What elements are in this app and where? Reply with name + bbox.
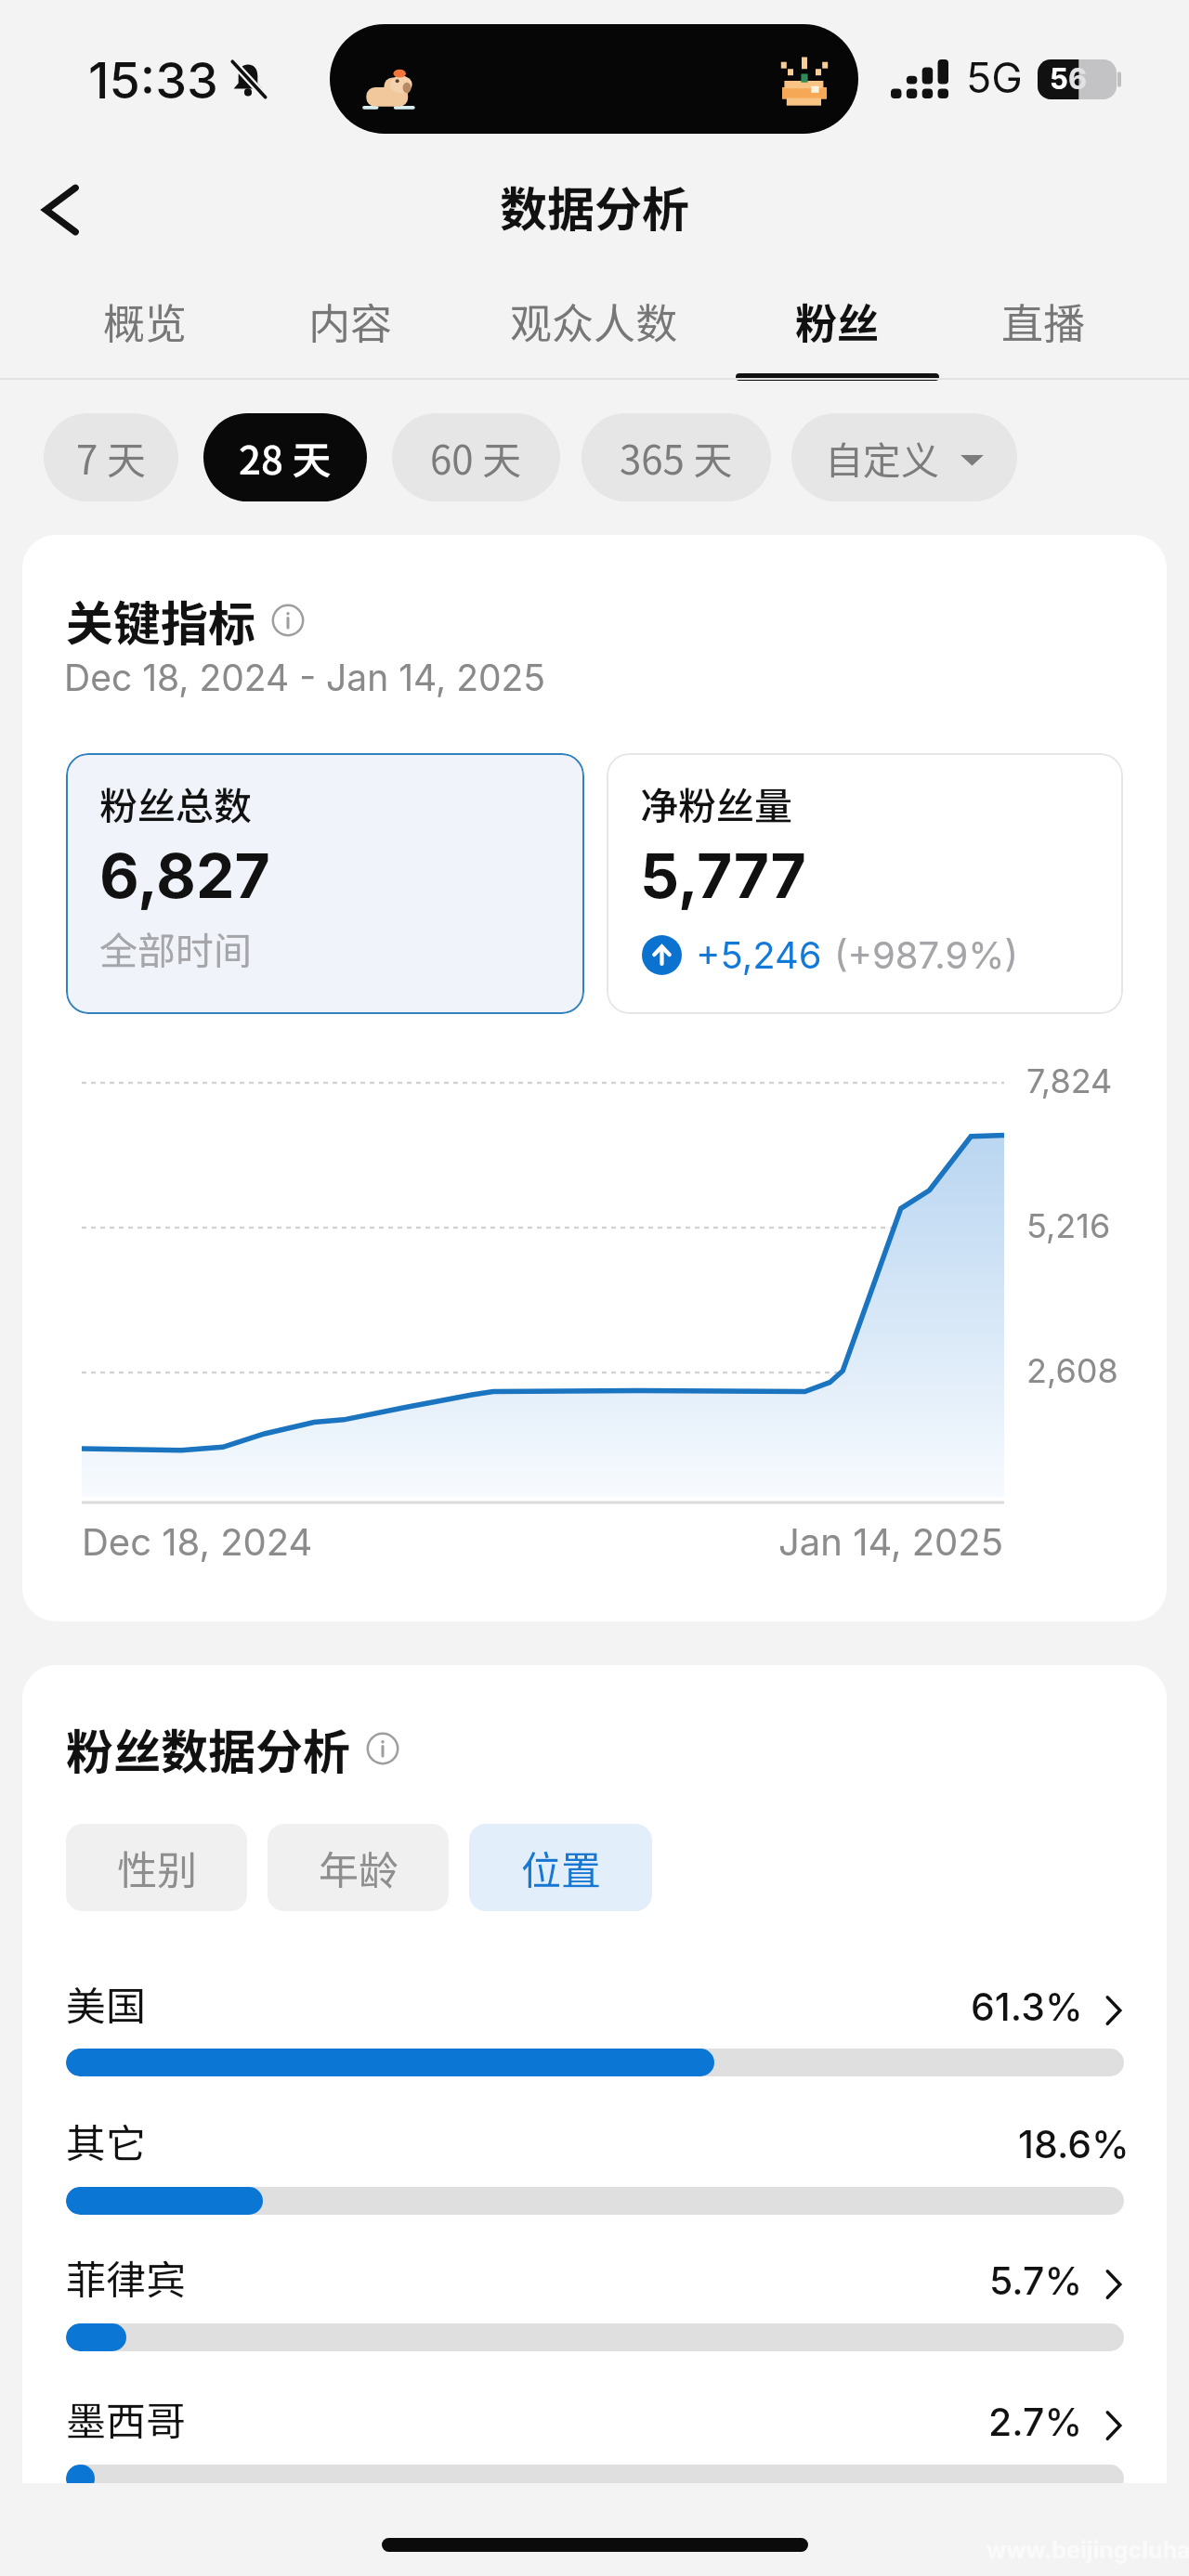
button[interactable]: 直播: [977, 291, 1109, 391]
staticText: 6,827: [99, 839, 270, 913]
button[interactable]: Back: [9, 159, 111, 261]
button[interactable]: [66, 1974, 1146, 2089]
staticText: 18.6%: [1018, 2121, 1130, 2167]
staticText: 性别: [117, 1839, 197, 1896]
staticText: 数据分析: [500, 172, 690, 241]
staticText: 5: [1050, 61, 1068, 97]
staticText: 5.7%: [989, 2257, 1083, 2304]
staticText: 粉丝数据分析: [66, 1714, 351, 1783]
staticText: 内容: [308, 291, 393, 351]
staticText: 6: [1068, 61, 1088, 97]
button[interactable]: [66, 2389, 1146, 2483]
staticText: 关键指标: [66, 586, 256, 655]
button[interactable]: 内容: [284, 291, 416, 391]
staticText: Dec 18, 2024 - Jan 14, 2025: [64, 656, 546, 699]
staticText: 5,777: [640, 839, 806, 913]
button[interactable]: 位置: [469, 1824, 652, 1911]
staticText: 粉丝总数: [99, 775, 252, 830]
staticText: 7,824: [1026, 1060, 1113, 1101]
button[interactable]: 粉丝总数: [66, 753, 584, 1014]
button[interactable]: 概览: [79, 291, 211, 391]
staticText: 位置: [521, 1839, 601, 1896]
button[interactable]: 净粉丝量: [607, 753, 1123, 1014]
staticText: 5G: [966, 52, 1023, 102]
staticText: 全部时间: [99, 920, 252, 975]
staticText: 粉丝: [795, 291, 880, 351]
staticText: 60 天: [430, 429, 522, 486]
staticText: 15:33: [88, 50, 218, 111]
staticText: Dec 18, 2024: [82, 1519, 313, 1564]
staticText: 观众人数: [510, 291, 678, 351]
button[interactable]: [66, 2248, 1146, 2364]
button[interactable]: [66, 2112, 1146, 2228]
staticText: 28 天: [239, 429, 332, 486]
button[interactable]: 365 天: [581, 413, 771, 501]
button[interactable]: 7 天: [44, 413, 178, 501]
button[interactable]: 观众人数: [486, 291, 701, 391]
staticText: 美国: [66, 1974, 146, 2032]
staticText: 7 天: [76, 429, 146, 486]
button[interactable]: 粉丝: [771, 291, 903, 391]
staticText: 直播: [1001, 291, 1086, 351]
button[interactable]: 28 天: [203, 413, 367, 501]
staticText: 2.7%: [988, 2399, 1083, 2445]
staticText: 年龄: [319, 1839, 399, 1896]
staticText: 墨西哥: [66, 2389, 186, 2447]
staticText: +5,246: [696, 932, 822, 977]
staticText: (+987.9%): [834, 932, 1019, 977]
button[interactable]: 年龄: [268, 1824, 449, 1911]
staticText: Jan 14, 2025: [778, 1519, 1004, 1564]
staticText: 净粉丝量: [640, 775, 792, 830]
staticText: 2,608: [1026, 1350, 1118, 1391]
staticText: 61.3%: [971, 1984, 1083, 2030]
button[interactable]: 60 天: [392, 413, 560, 501]
staticText: 自定义: [825, 430, 939, 485]
staticText: 365 天: [620, 429, 733, 486]
staticText: 其它: [66, 2112, 146, 2169]
button[interactable]: 性别: [66, 1824, 247, 1911]
staticText: 菲律宾: [66, 2248, 186, 2306]
button[interactable]: 自定义: [791, 413, 1017, 501]
staticText: 概览: [103, 291, 188, 351]
staticText: 5,216: [1026, 1205, 1111, 1246]
